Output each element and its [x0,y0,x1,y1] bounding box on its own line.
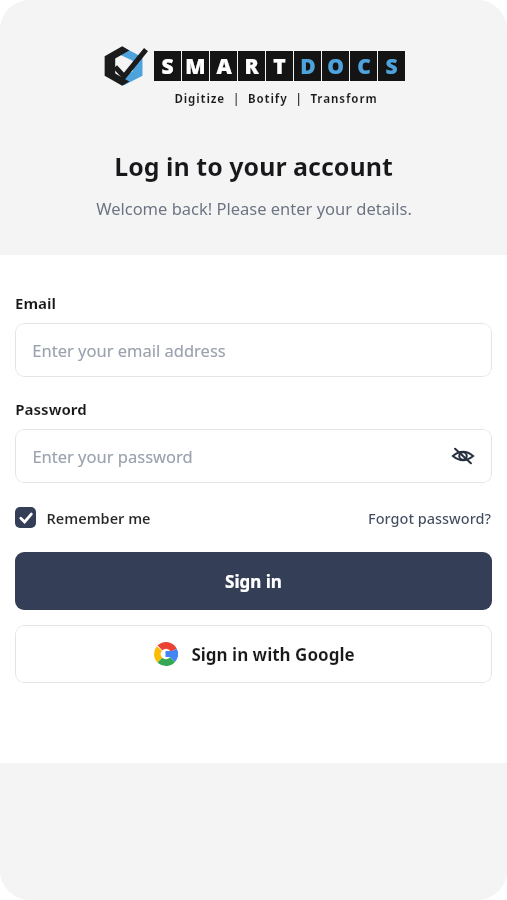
button[interactable]: Remember me [15,505,151,530]
staticText: S [161,52,174,81]
button[interactable]: Enter your password [15,429,492,483]
button[interactable]: Sign in with Google [15,625,492,683]
staticText: C [357,52,371,81]
button[interactable]: Enter your email address [15,323,492,377]
staticText: A [216,52,232,81]
staticText: Sign in [225,570,282,593]
staticText: D [300,52,316,81]
staticText: Log in to your account [114,149,393,183]
staticText: O [327,52,344,81]
staticText: Email [15,293,56,313]
staticText: Enter your password [32,445,193,467]
button[interactable]: Forgot password? [367,506,492,530]
staticText: Forgot password? [368,508,491,528]
staticText: Remember me [46,508,151,528]
button[interactable]: Sign in [15,552,492,610]
staticText: Sign in with Google [191,643,355,666]
staticText: R [244,52,259,81]
staticText: S [385,52,398,81]
button[interactable]: Show password [448,441,478,471]
staticText: M [185,52,206,81]
staticText: T [273,52,286,81]
staticText: Digitize | Botify | Transform [174,91,378,107]
staticText: Enter your email address [32,339,226,361]
staticText: Welcome back! Please enter your details. [96,197,412,219]
staticText: Password [15,399,87,419]
